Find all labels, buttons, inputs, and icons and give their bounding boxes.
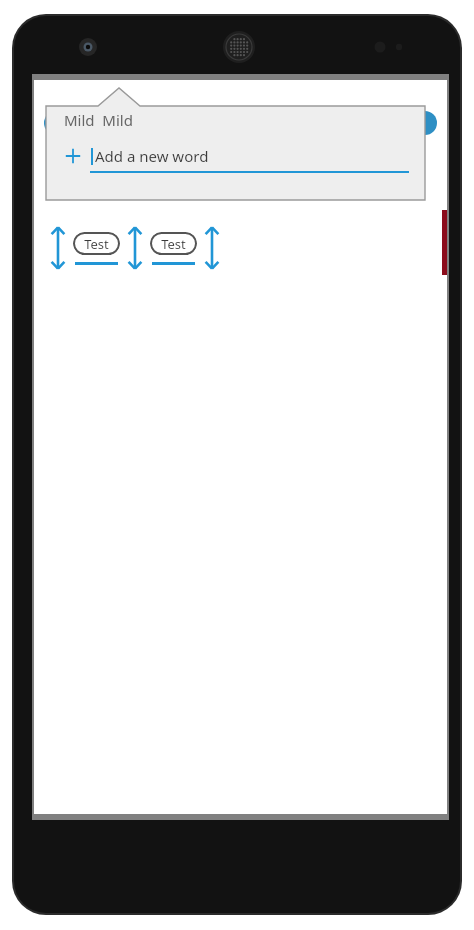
button[interactable]: Test [150, 232, 197, 265]
button[interactable]: Move up or down [204, 224, 220, 272]
button[interactable]: Add a new word [64, 146, 411, 166]
button[interactable]: Move up or down [127, 224, 143, 272]
staticText: Mild Mild [64, 110, 133, 130]
button[interactable]: Test [73, 232, 120, 265]
staticText: Test [161, 235, 186, 253]
staticText: Add a new word [95, 146, 209, 166]
button[interactable]: Move up or down [50, 224, 66, 272]
staticText: Test [84, 235, 109, 253]
